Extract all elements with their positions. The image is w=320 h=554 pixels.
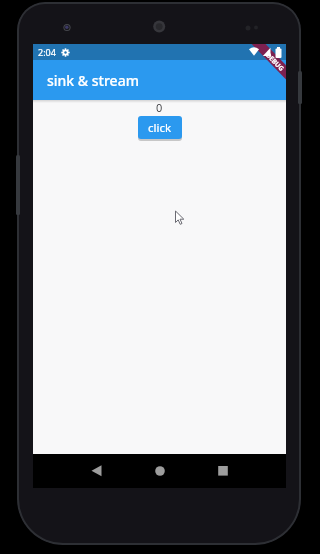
button[interactable]: click <box>138 116 182 139</box>
staticText: click <box>148 120 172 136</box>
staticText: 2:04 <box>38 46 56 58</box>
staticText: sink & stream <box>47 71 139 90</box>
staticText: 0 <box>156 100 163 115</box>
staticText: DEBUG <box>264 50 286 73</box>
